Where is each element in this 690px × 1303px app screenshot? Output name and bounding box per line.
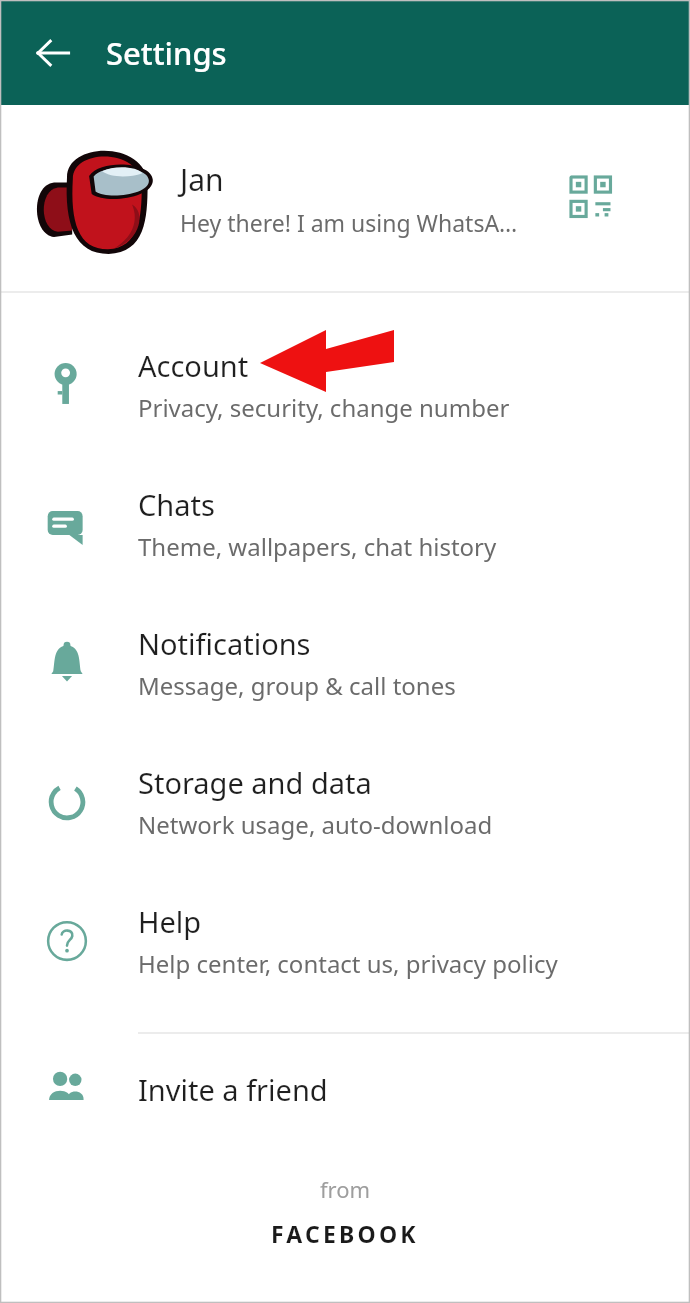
staticText: Theme, wallpapers, chat history <box>138 530 497 563</box>
staticText: from <box>320 1174 371 1204</box>
button[interactable]: Invite a friend <box>0 1052 690 1126</box>
staticText: Chats <box>138 485 215 524</box>
staticText: Hey there! I am using WhatsA… <box>180 207 518 238</box>
button[interactable]: Back <box>22 22 84 84</box>
staticText: Invite a friend <box>138 1070 328 1109</box>
button[interactable]: Account <box>0 315 690 454</box>
staticText: Jan <box>180 159 224 200</box>
staticText: Settings <box>106 32 227 74</box>
staticText: Account <box>138 346 249 385</box>
staticText: FACEBOOK <box>271 1218 419 1249</box>
staticText: Network usage, auto-download <box>138 808 493 841</box>
button[interactable]: Notifications <box>0 593 690 732</box>
button[interactable]: Chats <box>0 454 690 593</box>
button[interactable]: Storage and data <box>0 732 690 871</box>
button[interactable]: Jan <box>0 105 690 291</box>
button[interactable]: Help <box>0 871 690 1010</box>
staticText: Help <box>138 902 202 941</box>
staticText: Message, group & call tones <box>138 669 456 702</box>
staticText: Storage and data <box>138 763 372 802</box>
button[interactable]: QR code <box>561 167 623 229</box>
staticText: Help center, contact us, privacy policy <box>138 947 558 980</box>
staticText: Notifications <box>138 624 311 663</box>
staticText: Privacy, security, change number <box>138 391 510 424</box>
